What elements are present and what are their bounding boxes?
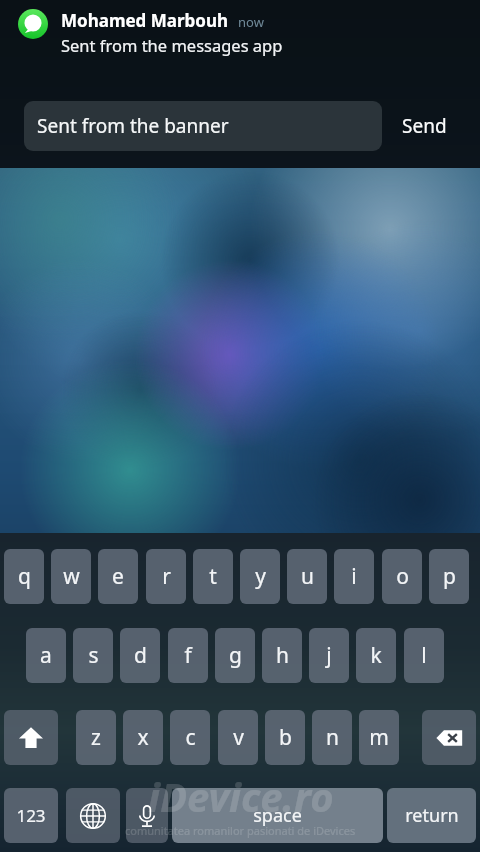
staticText: u [301, 562, 314, 591]
button[interactable]: Sent from the banner [24, 101, 382, 151]
staticText: y [255, 562, 266, 591]
button[interactable]: return [387, 788, 476, 843]
button[interactable]: 123 [4, 788, 58, 843]
button[interactable]: i [334, 549, 374, 604]
button[interactable]: y [240, 549, 280, 604]
button[interactable]: c [170, 710, 210, 765]
staticText: e [112, 562, 124, 591]
button[interactable]: f [168, 628, 208, 683]
button[interactable]: Change keyboard [66, 788, 120, 843]
button[interactable]: p [429, 549, 469, 604]
button[interactable]: space [172, 788, 383, 843]
button[interactable]: u [287, 549, 327, 604]
button[interactable]: r [146, 549, 186, 604]
button[interactable]: h [262, 628, 302, 683]
button[interactable]: s [73, 628, 113, 683]
staticText: t [209, 562, 217, 591]
button[interactable]: q [4, 549, 44, 604]
staticText: b [279, 723, 292, 752]
staticText: p [443, 562, 456, 591]
staticText: now [238, 13, 264, 31]
staticText: 123 [16, 804, 46, 827]
button[interactable]: g [215, 628, 255, 683]
button[interactable]: Shift [4, 710, 58, 765]
staticText: space [253, 803, 302, 828]
button[interactable]: x [123, 710, 163, 765]
button[interactable]: k [356, 628, 396, 683]
staticText: c [185, 723, 196, 752]
button[interactable]: e [98, 549, 138, 604]
button[interactable]: m [359, 710, 399, 765]
button[interactable]: d [120, 628, 160, 683]
button[interactable]: z [76, 710, 116, 765]
staticText: iDevice.ro [148, 769, 334, 823]
button[interactable]: l [404, 628, 444, 683]
staticText: z [91, 723, 101, 752]
button[interactable]: o [382, 549, 422, 604]
staticText: Sent from the messages app [61, 34, 283, 56]
staticText: r [162, 562, 171, 591]
staticText: s [88, 641, 99, 670]
staticText: n [326, 723, 339, 752]
staticText: i [351, 562, 357, 591]
button[interactable]: t [193, 549, 233, 604]
staticText: Sent from the banner [37, 113, 229, 139]
button[interactable]: Backspace [422, 710, 476, 765]
staticText: Mohamed Marbouh [61, 9, 229, 32]
staticText: l [421, 641, 427, 670]
staticText: f [184, 641, 192, 670]
staticText: o [396, 562, 409, 591]
staticText: v [233, 723, 244, 752]
staticText: return [405, 803, 459, 828]
button[interactable]: Dictate [126, 788, 168, 843]
button[interactable]: v [218, 710, 258, 765]
staticText: w [63, 562, 80, 591]
button[interactable]: b [265, 710, 305, 765]
staticText: m [369, 723, 389, 752]
staticText: x [137, 723, 149, 752]
staticText: d [134, 641, 147, 670]
staticText: g [229, 641, 242, 670]
button[interactable]: Send [396, 107, 453, 145]
button[interactable]: a [26, 628, 66, 683]
staticText: j [326, 641, 332, 670]
button[interactable]: j [309, 628, 349, 683]
staticText: comunitatea romanilor pasionati de iDevi… [125, 823, 356, 838]
button[interactable]: n [312, 710, 352, 765]
staticText: q [18, 562, 31, 591]
staticText: k [370, 641, 382, 670]
staticText: h [276, 641, 289, 670]
staticText: Send [402, 113, 447, 139]
button[interactable]: w [51, 549, 91, 604]
staticText: a [40, 641, 52, 670]
